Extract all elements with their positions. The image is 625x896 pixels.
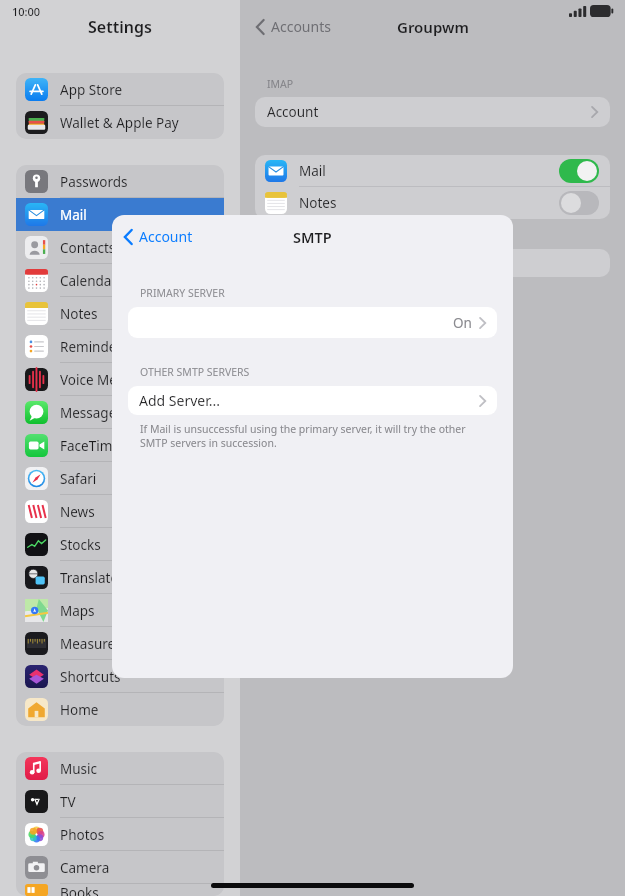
button[interactable]: Account — [120, 223, 197, 250]
staticText: Notes — [60, 305, 98, 323]
button[interactable]: Measure — [16, 627, 224, 660]
staticText: Notes — [299, 194, 337, 212]
staticText: Settings — [88, 16, 152, 38]
staticText: On — [453, 314, 472, 332]
button[interactable]: App Store — [16, 73, 224, 106]
button[interactable] — [255, 249, 610, 277]
button[interactable]: Notes — [255, 187, 610, 219]
staticText: Passwords — [60, 173, 128, 191]
staticText: OTHER SMTP SERVERS — [140, 365, 250, 379]
staticText: Groupwm — [397, 17, 469, 37]
button[interactable]: Notes — [16, 297, 224, 330]
staticText: Books — [60, 884, 99, 896]
button[interactable]: Mail — [255, 155, 610, 187]
staticText: PRIMARY SERVER — [140, 286, 225, 300]
staticText: Accounts — [271, 17, 331, 36]
staticText: Camera — [60, 859, 110, 877]
button[interactable]: News — [16, 495, 224, 528]
button[interactable]: Maps — [16, 594, 224, 627]
staticText: Safari — [60, 470, 97, 488]
staticText: Mail — [60, 206, 87, 224]
staticText: Maps — [60, 602, 95, 620]
staticText: SMTP — [293, 227, 332, 247]
button[interactable]: Camera — [16, 851, 224, 884]
button[interactable]: Mail on — [559, 159, 599, 183]
staticText: Contacts — [60, 239, 116, 257]
button[interactable]: Mail — [16, 198, 224, 231]
staticText: Mail — [299, 162, 326, 180]
staticText: Photos — [60, 826, 105, 844]
staticText: Account — [267, 103, 319, 121]
button[interactable]: Account — [255, 97, 610, 127]
staticText: Messages — [60, 404, 123, 422]
staticText: Calendar — [60, 272, 117, 290]
staticText: TV — [60, 793, 76, 811]
button[interactable]: Notes off — [559, 191, 599, 215]
staticText: Reminders — [60, 338, 129, 356]
button[interactable]: On — [128, 307, 497, 338]
staticText: Stocks — [60, 536, 101, 554]
staticText: Music — [60, 760, 98, 778]
button[interactable]: Photos — [16, 818, 224, 851]
button[interactable]: Translate — [16, 561, 224, 594]
button[interactable]: Voice Memos — [16, 363, 224, 396]
button[interactable]: Contacts — [16, 231, 224, 264]
button[interactable]: Safari — [16, 462, 224, 495]
staticText: Home — [60, 701, 99, 719]
staticText: Voice Memos — [60, 371, 145, 389]
button[interactable]: Messages — [16, 396, 224, 429]
button[interactable]: Home — [16, 693, 224, 726]
staticText: News — [60, 503, 95, 521]
button[interactable]: Reminders — [16, 330, 224, 363]
staticText: Wallet & Apple Pay — [60, 114, 179, 132]
staticText: If Mail is unsuccessful using the primar… — [140, 422, 483, 450]
staticText: IMAP — [267, 77, 294, 91]
button[interactable]: Calendar — [16, 264, 224, 297]
staticText: Shortcuts — [60, 668, 121, 686]
button[interactable]: Books — [16, 884, 224, 896]
button[interactable]: Add Server... — [128, 386, 497, 415]
button[interactable]: Shortcuts — [16, 660, 224, 693]
staticText: App Store — [60, 81, 123, 99]
button[interactable]: Stocks — [16, 528, 224, 561]
staticText: FaceTime — [60, 437, 120, 455]
staticText: Measure — [60, 635, 116, 653]
staticText: Translate — [60, 569, 119, 587]
button[interactable]: FaceTime — [16, 429, 224, 462]
staticText: Account — [139, 227, 193, 246]
button[interactable]: Accounts — [252, 13, 335, 40]
staticText: Add Server... — [139, 391, 220, 410]
button[interactable]: Wallet & Apple Pay — [16, 106, 224, 139]
button[interactable]: TV — [16, 785, 224, 818]
button[interactable]: Passwords — [16, 165, 224, 198]
button[interactable]: Music — [16, 752, 224, 785]
staticText: 10:00 — [12, 4, 41, 19]
